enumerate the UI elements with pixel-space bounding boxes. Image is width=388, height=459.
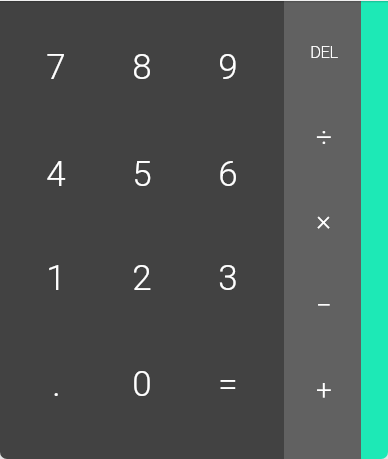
staticText: 9 <box>218 47 238 88</box>
staticText: 0 <box>132 364 152 405</box>
staticText: 8 <box>132 47 152 88</box>
staticText: + <box>316 374 332 407</box>
button[interactable]: 0 <box>94 344 189 459</box>
button[interactable]: 2 <box>94 229 189 344</box>
staticText: 6 <box>218 154 238 195</box>
button[interactable]: 6 <box>189 114 284 229</box>
staticText: 1 <box>46 258 66 299</box>
button[interactable]: 1 <box>0 229 94 344</box>
button[interactable]: Add <box>284 367 361 459</box>
staticText: 4 <box>46 154 66 195</box>
button[interactable]: = <box>189 344 284 459</box>
staticText: 2 <box>132 258 152 299</box>
staticText: × <box>316 204 331 237</box>
staticText: . <box>52 364 61 405</box>
button[interactable]: . <box>0 344 94 459</box>
button[interactable]: Delete <box>284 0 361 91</box>
button[interactable]: 4 <box>0 114 94 229</box>
button[interactable]: 5 <box>94 114 189 229</box>
staticText: 5 <box>132 154 152 195</box>
staticText: = <box>218 364 238 405</box>
button[interactable]: 3 <box>189 229 284 344</box>
staticText: − <box>316 289 332 322</box>
button[interactable]: 8 <box>94 0 189 114</box>
staticText: DEL <box>310 43 338 62</box>
staticText: ÷ <box>316 121 332 154</box>
button[interactable]: Divide <box>284 91 361 183</box>
button[interactable]: 7 <box>0 0 94 114</box>
staticText: 7 <box>46 47 66 88</box>
staticText: 3 <box>218 258 238 299</box>
button[interactable]: Multiply <box>284 183 361 275</box>
button[interactable]: 9 <box>189 0 284 114</box>
button[interactable]: Subtract <box>284 275 361 367</box>
